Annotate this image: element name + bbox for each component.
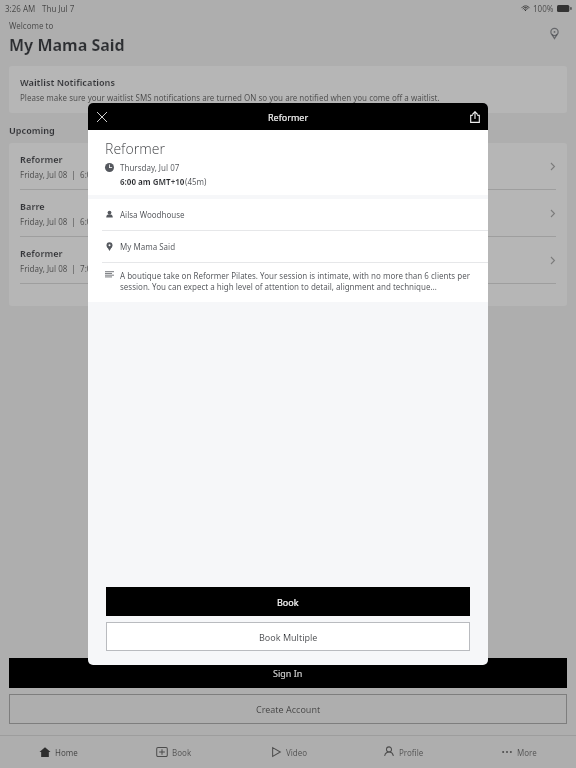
staticText: Book (277, 596, 299, 608)
button[interactable]: Share (461, 103, 488, 130)
button[interactable]: A boutique take on Reformer Pilates. You… (88, 263, 488, 302)
button[interactable]: Sign In (9, 658, 567, 688)
staticText: Profile (399, 747, 424, 758)
staticText: Create Account (256, 703, 321, 715)
button[interactable]: Create Account (9, 694, 567, 724)
button[interactable]: My Mama Said (88, 231, 488, 262)
staticText: Thu Jul 7 (42, 3, 75, 14)
staticText: Upcoming (9, 124, 55, 136)
staticText: Home (55, 747, 78, 758)
button[interactable]: More (461, 736, 576, 768)
staticText: Reformer (105, 139, 165, 158)
button[interactable]: Home (0, 736, 116, 768)
staticText: 6:00 am GMT+10 (120, 176, 185, 187)
staticText: Friday, Jul 08 | 6:00 am (20, 216, 110, 227)
button[interactable]: Reformer (9, 237, 567, 283)
button[interactable]: Ailsa Woodhouse (88, 199, 488, 230)
staticText: Welcome to (9, 20, 54, 31)
staticText: Barre (20, 200, 45, 212)
staticText: Thursday, Jul 07 (120, 162, 180, 173)
button[interactable]: Profile (346, 736, 461, 768)
staticText: Waitlist Notifications (20, 76, 115, 88)
button[interactable]: Video (231, 736, 346, 768)
button[interactable]: Book Multiple (106, 622, 470, 651)
button[interactable]: Barre (9, 190, 567, 236)
staticText: 100% (533, 3, 554, 14)
staticText: A boutique take on Reformer Pilates. You… (120, 270, 474, 293)
staticText: My Mama Said (9, 34, 125, 56)
staticText: Friday, Jul 08 | 7:00 am (20, 263, 110, 274)
staticText: Book Multiple (259, 631, 318, 643)
staticText: Book (172, 747, 192, 758)
staticText: Sign In (273, 667, 303, 679)
button[interactable]: Reformer (9, 143, 567, 189)
staticText: My Mama Said (120, 241, 176, 252)
staticText: 3:26 AM (5, 3, 36, 14)
staticText: Please make sure your waitlist SMS notif… (20, 92, 440, 103)
staticText: (45m) (185, 176, 207, 187)
staticText: Video (286, 747, 308, 758)
button[interactable]: Close (88, 103, 115, 130)
button[interactable]: Locations (541, 20, 567, 46)
staticText: Reformer (20, 247, 63, 259)
staticText: Reformer (20, 153, 63, 165)
staticText: Reformer (268, 111, 309, 123)
staticText: Friday, Jul 08 | 6:00 am (20, 169, 110, 180)
staticText: Ailsa Woodhouse (120, 209, 185, 220)
button[interactable]: Book (106, 587, 470, 616)
button[interactable]: Book (116, 736, 231, 768)
staticText: More (517, 747, 537, 758)
